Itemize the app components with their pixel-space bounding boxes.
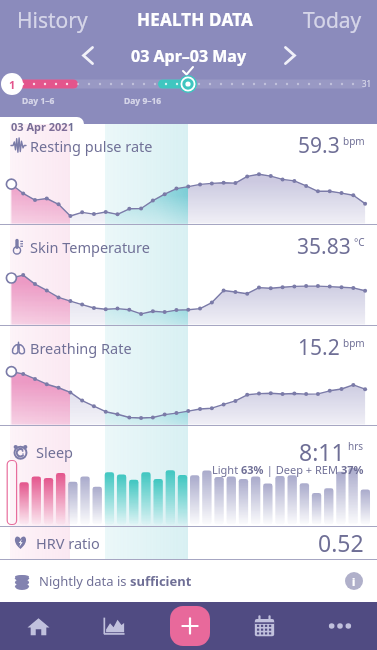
staticText: 8:11 [299, 436, 345, 467]
button[interactable] [179, 75, 197, 93]
staticText: Today [303, 6, 362, 34]
staticText: 31 [362, 78, 372, 89]
button[interactable]: 1 [1, 73, 23, 95]
button[interactable]: Charts [76, 602, 152, 650]
button[interactable]: History [0, 0, 102, 40]
button[interactable]: 03 Apr 2021 [11, 119, 74, 134]
staticText: hrs [348, 439, 364, 453]
staticText: 1 [9, 77, 16, 92]
button[interactable]: Nightly data is [0, 560, 377, 602]
button[interactable]: Sleep [0, 426, 377, 527]
button[interactable]: Skin Temperature [0, 225, 377, 326]
staticText: | Deep + REM [264, 462, 341, 477]
staticText: History [17, 6, 88, 34]
button[interactable]: Resting pulse rate [0, 124, 377, 225]
staticText: Nightly data is [39, 572, 130, 590]
staticText: Day 1–6 [22, 95, 55, 107]
staticText: Day 9–16 [124, 95, 162, 107]
button[interactable]: More [302, 602, 377, 650]
staticText: 35.83 [297, 232, 351, 261]
staticText: Sleep [36, 442, 73, 462]
staticText: bpm [343, 336, 365, 350]
button[interactable]: Breathing Rate [0, 326, 377, 426]
staticText: bpm [343, 134, 365, 148]
staticText: 37% [341, 462, 364, 477]
staticText: 03 Apr 2021 [11, 119, 74, 134]
button[interactable]: HRV ratio [0, 527, 377, 560]
button[interactable]: Info [345, 572, 363, 590]
button[interactable]: Add entry [170, 606, 210, 646]
staticText: HRV ratio [36, 533, 100, 553]
staticText: 03 Apr–03 May [131, 45, 247, 67]
button[interactable]: Home [0, 602, 76, 650]
staticText: °C [354, 235, 365, 249]
staticText: HEALTH DATA [137, 8, 253, 31]
staticText: i [352, 574, 356, 589]
staticText: Breathing Rate [30, 338, 132, 358]
staticText: Light [212, 462, 241, 477]
staticText: Resting pulse rate [30, 136, 153, 156]
button[interactable]: Calendar [227, 602, 302, 650]
staticText: Skin Temperature [30, 237, 150, 257]
button[interactable]: Today [289, 0, 377, 40]
staticText: 15.2 [298, 333, 340, 362]
staticText: 0.52 [318, 527, 364, 558]
button[interactable]: Next period [275, 43, 305, 67]
button[interactable]: Previous period [73, 43, 103, 67]
staticText: 63% [241, 462, 264, 477]
staticText: 59.3 [298, 131, 340, 160]
staticText: sufficient [130, 572, 192, 590]
